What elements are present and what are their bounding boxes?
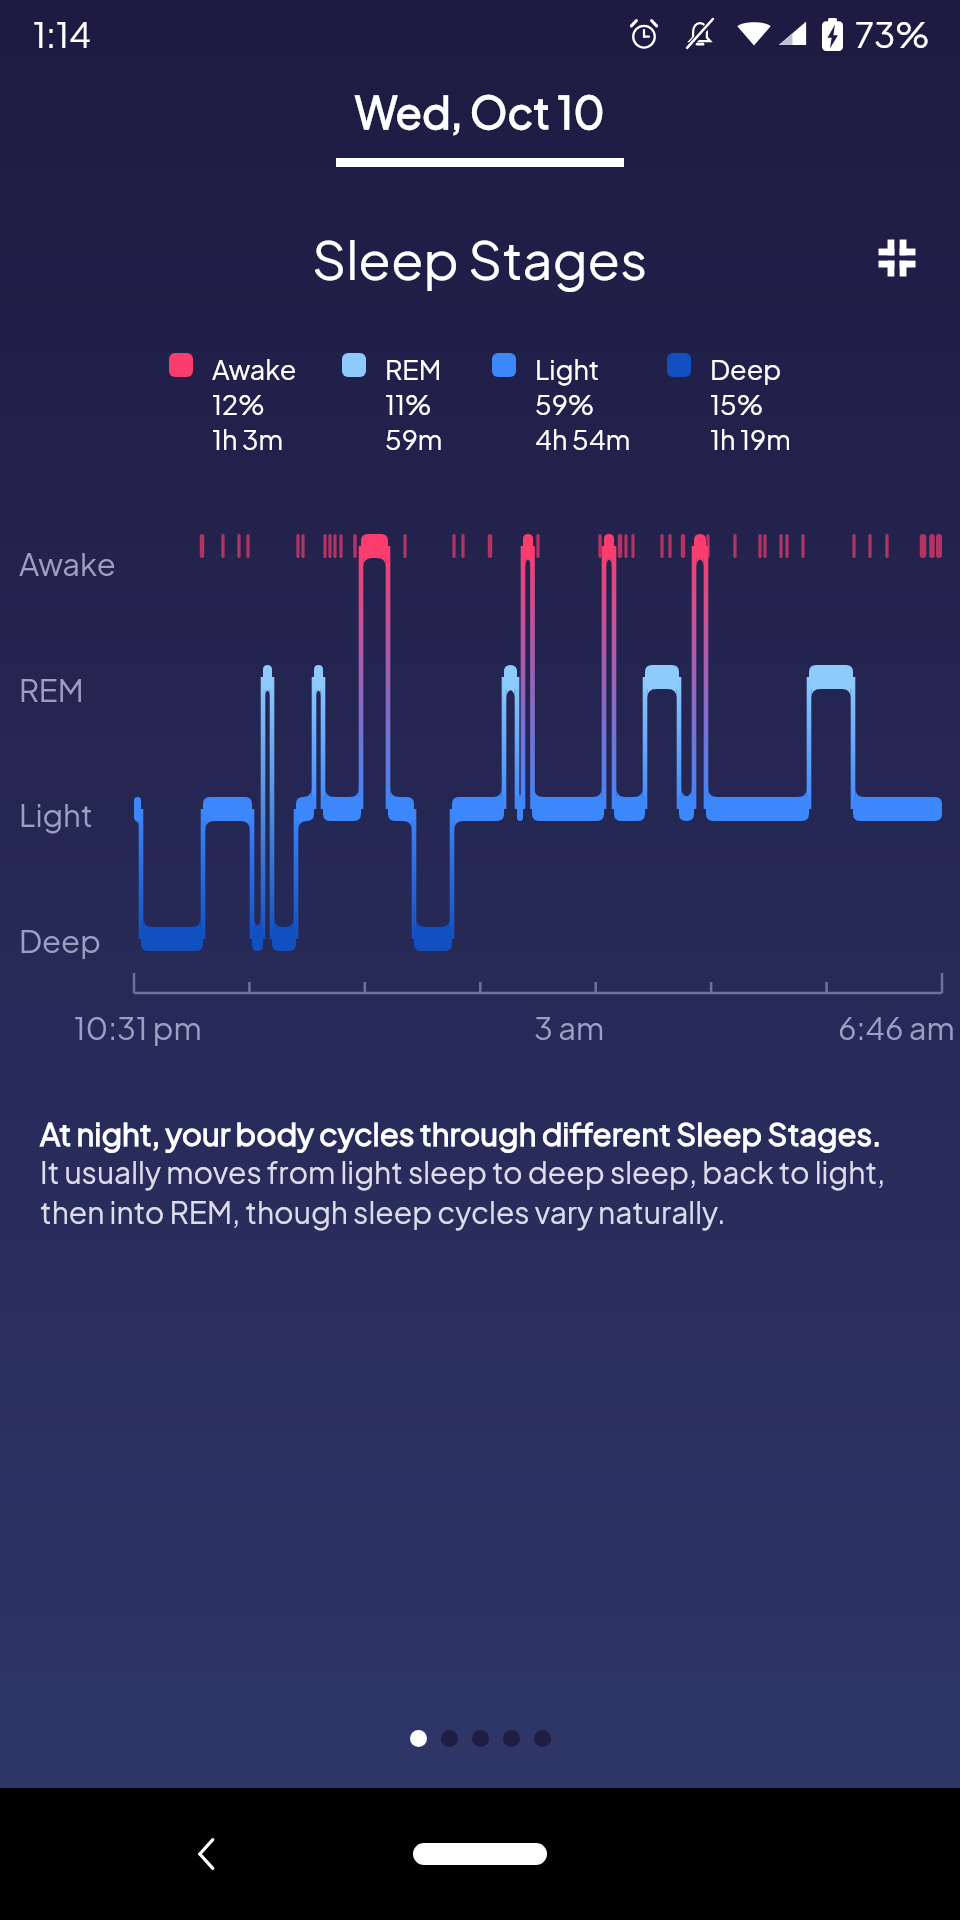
staticText: 59% [535, 387, 595, 421]
button[interactable]: Page 1 [410, 1730, 427, 1747]
staticText: Deep [19, 921, 101, 960]
staticText: REM [385, 352, 442, 386]
staticText: Awake [19, 544, 116, 583]
staticText: At night, your body cycles through diffe… [40, 1114, 882, 1153]
staticText: 1h 3m [212, 422, 284, 456]
staticText: 12% [212, 387, 265, 421]
staticText: 73% [855, 12, 930, 56]
button[interactable]: Collapse [866, 227, 928, 289]
staticText: Sleep Stages [312, 225, 648, 292]
staticText: 1h 19m [710, 422, 791, 456]
staticText: 3 am [534, 1008, 605, 1047]
button[interactable]: Page 5 [534, 1730, 551, 1747]
staticText: 15% [710, 387, 763, 421]
button[interactable]: Home [413, 1843, 547, 1865]
staticText: REM [19, 670, 84, 709]
staticText: Wed, Oct 10 [355, 84, 605, 138]
button[interactable]: Back [175, 1822, 239, 1886]
staticText: 59m [385, 422, 443, 456]
staticText: 10:31 pm [74, 1008, 202, 1047]
staticText: Deep [710, 352, 782, 386]
staticText: Light [535, 352, 600, 386]
staticText: Awake [212, 352, 297, 386]
staticText: Light [19, 795, 93, 834]
staticText: 11% [385, 387, 432, 421]
staticText: 4h 54m [535, 422, 631, 456]
staticText: It usually moves from light sleep to dee… [40, 1153, 886, 1231]
button[interactable]: Page 4 [503, 1730, 520, 1747]
staticText: 6:46 am [838, 1008, 955, 1047]
button[interactable]: Page 2 [441, 1730, 458, 1747]
button[interactable]: Page 3 [472, 1730, 489, 1747]
staticText: 1:14 [33, 12, 92, 56]
